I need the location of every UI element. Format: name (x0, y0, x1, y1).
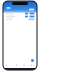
button[interactable]: Compose (31, 59, 34, 62)
button[interactable]: Back (6, 7, 10, 9)
